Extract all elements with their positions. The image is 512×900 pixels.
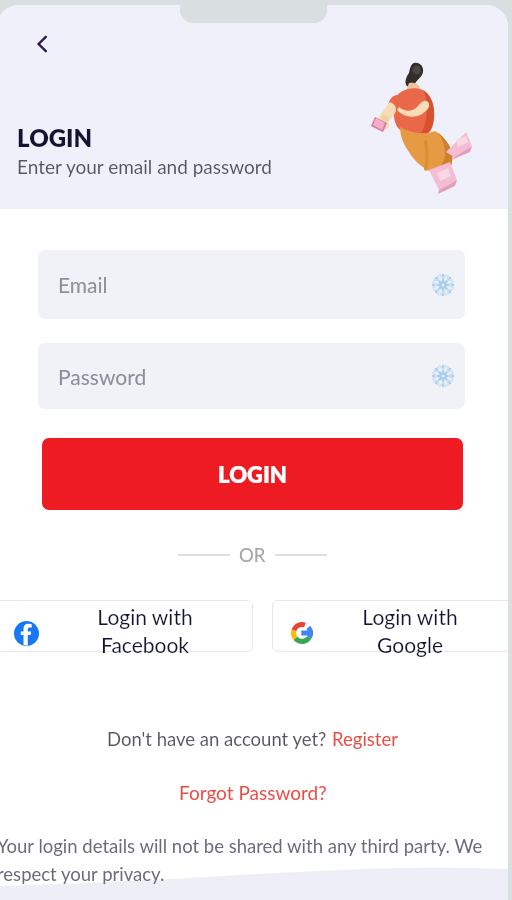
staticText: Forgot Password? [179, 781, 327, 804]
staticText: Your login details will not be shared wi… [0, 835, 497, 885]
button[interactable]: Back [21, 23, 63, 65]
staticText: Password [58, 364, 147, 389]
staticText: LOGIN [218, 461, 287, 487]
staticText: Register [332, 728, 398, 750]
button[interactable]: Register [332, 728, 398, 750]
button[interactable] [272, 600, 508, 652]
button[interactable]: Email [38, 250, 465, 319]
staticText: Email [58, 272, 108, 297]
button[interactable]: Password [38, 343, 465, 409]
staticText: Login with Google [330, 604, 490, 658]
staticText: Don't have an account yet? [107, 728, 332, 750]
staticText: OR [239, 544, 266, 566]
staticText: Enter your email and password [17, 155, 273, 178]
button[interactable]: LOGIN [42, 438, 463, 510]
button[interactable]: Forgot Password? [179, 781, 327, 804]
button[interactable] [0, 600, 253, 652]
staticText: Login with Facebook [65, 604, 225, 658]
staticText: LOGIN [17, 123, 93, 152]
